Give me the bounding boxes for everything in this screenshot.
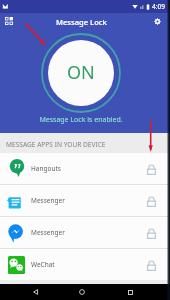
button[interactable]: Hangouts <box>0 153 170 184</box>
button[interactable]: Recent apps <box>123 285 137 299</box>
button[interactable]: WeChat <box>0 249 170 280</box>
button[interactable]: Toggle message lock <box>41 33 121 113</box>
button[interactable]: Apps <box>2 14 16 28</box>
button[interactable]: Home <box>75 285 89 299</box>
button[interactable]: Messenger <box>0 185 170 216</box>
button[interactable]: Lock Messenger <box>144 194 158 208</box>
button[interactable]: Lock WeChat <box>144 258 158 272</box>
button[interactable]: Messenger <box>0 217 170 248</box>
button[interactable]: Settings <box>150 14 164 28</box>
staticText: MESSAGE APPS IN YOUR DEVICE <box>6 140 106 149</box>
staticText: WeChat <box>31 260 55 269</box>
staticText: ON <box>67 60 95 85</box>
staticText: Message Lock <box>56 17 107 27</box>
staticText: Messenger <box>31 196 65 205</box>
staticText: Message Lock is enabled. <box>39 115 123 125</box>
button[interactable]: Back <box>28 285 42 299</box>
staticText: 4:09 <box>152 2 165 11</box>
button[interactable]: Lock Messenger <box>144 226 158 240</box>
staticText: Hangouts <box>31 164 61 173</box>
button[interactable]: Lock Hangouts <box>144 162 158 176</box>
staticText: Messenger <box>31 228 65 237</box>
